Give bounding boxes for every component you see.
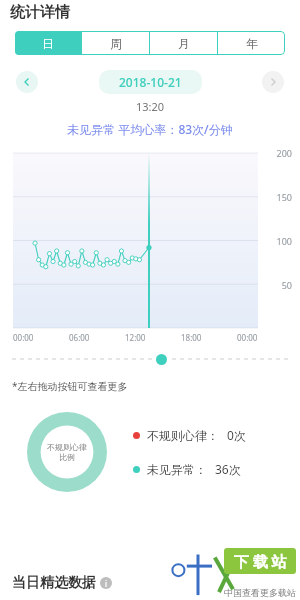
staticText: 不规则心律：	[147, 428, 219, 443]
staticText: 00:00	[237, 332, 258, 343]
staticText: 200	[0, 147, 292, 159]
staticText: i	[105, 578, 108, 589]
staticText: 100	[0, 235, 292, 247]
staticText: 未见异常 平均心率：83次/分钟	[0, 121, 300, 137]
button[interactable]: Scrub time	[152, 350, 170, 368]
button[interactable]: 月	[150, 31, 217, 55]
staticText: 月	[178, 36, 190, 51]
staticText: 不规则心律	[47, 442, 87, 452]
staticText: 未见异常：	[147, 462, 207, 477]
staticText: 日	[42, 36, 54, 51]
button[interactable]: 日	[15, 31, 81, 55]
staticText: 18:00	[181, 332, 202, 343]
staticText: 50	[0, 279, 292, 291]
button[interactable]: Next day	[262, 71, 284, 93]
staticText: 12:00	[125, 332, 146, 343]
staticText: 2018-10-21	[119, 74, 182, 90]
staticText: 00:00	[13, 332, 34, 343]
button[interactable]: 年	[218, 31, 285, 55]
button[interactable]: 2018-10-21	[99, 70, 202, 94]
staticText: 0次	[227, 427, 246, 443]
staticText: 统计详情	[10, 3, 70, 22]
staticText: 中国查看更多载站	[224, 587, 296, 598]
staticText: *左右拖动按钮可查看更多	[12, 379, 128, 393]
staticText: 下 载 站	[234, 551, 287, 571]
staticText: 13:20	[0, 99, 300, 114]
staticText: 周	[110, 36, 122, 51]
staticText: 当日精选数据	[12, 574, 96, 592]
staticText: 150	[0, 191, 292, 203]
staticText: 36次	[215, 461, 241, 477]
staticText: 比例	[59, 452, 75, 462]
staticText: 年	[246, 36, 258, 51]
staticText: 06:00	[69, 332, 90, 343]
button[interactable]: 周	[82, 31, 149, 55]
button[interactable]: Previous day	[16, 71, 38, 93]
